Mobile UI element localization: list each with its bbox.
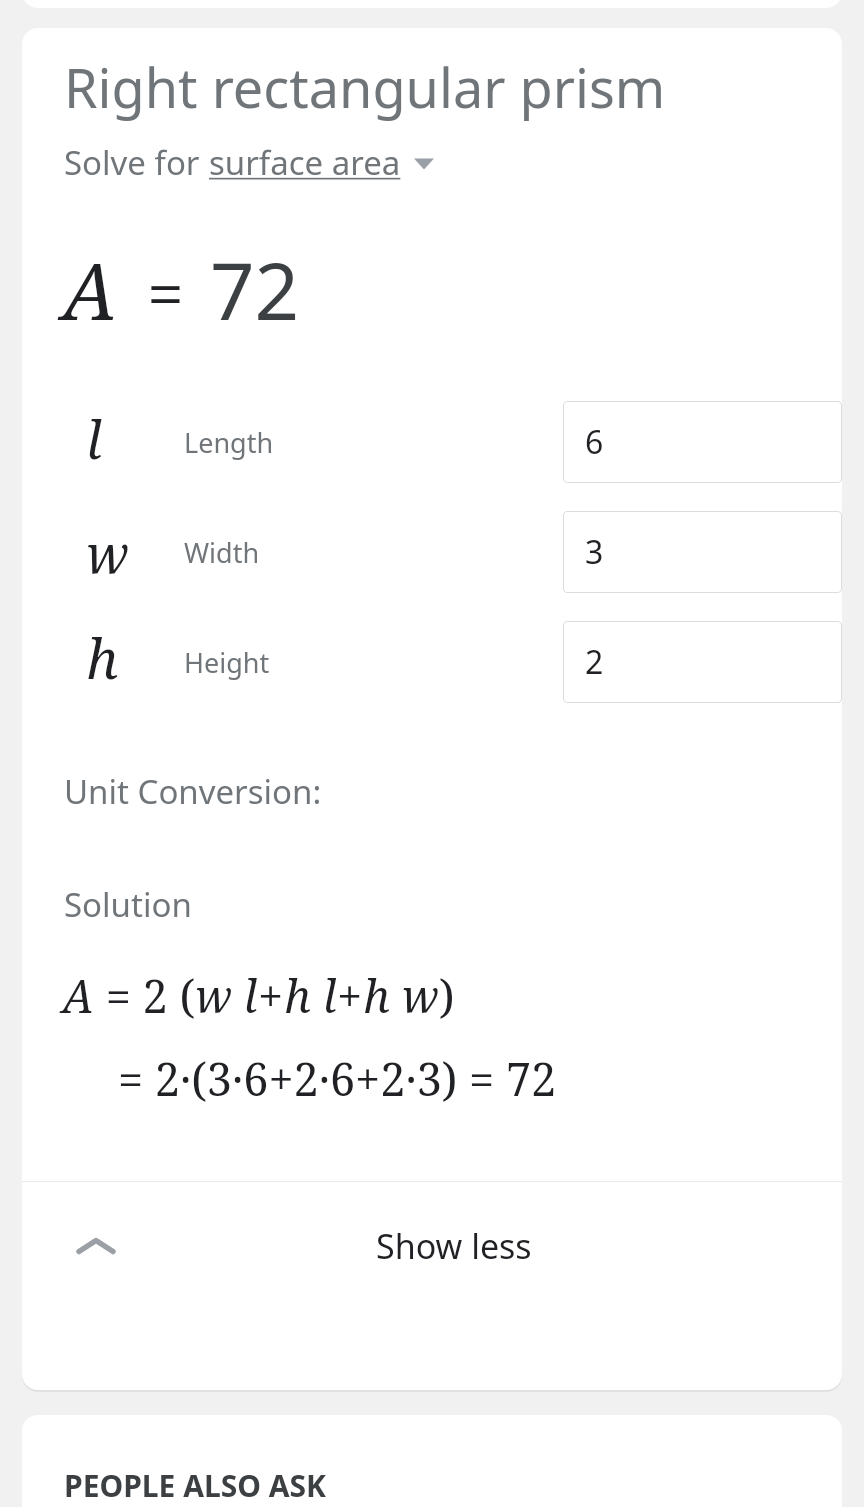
staticText: h w	[363, 965, 439, 1026]
button[interactable]: Show less	[22, 1182, 842, 1310]
staticText: PEOPLE ALSO ASK	[64, 1465, 326, 1506]
staticText: )	[439, 965, 455, 1026]
staticText: Solve for	[64, 140, 209, 185]
staticText: h l	[284, 965, 337, 1026]
staticText: 72	[210, 237, 300, 343]
staticText: Right rectangular prism	[64, 50, 666, 124]
staticText: w	[86, 517, 129, 588]
button[interactable]: w	[22, 497, 842, 607]
staticText: surface area	[209, 140, 401, 185]
staticText: = 2·(3·6+2·6+2·3) = 72	[118, 1048, 557, 1109]
staticText: h	[86, 621, 119, 695]
staticText: Unit Conversion:	[64, 769, 322, 814]
staticText: Width	[184, 534, 260, 571]
staticText: w l	[195, 965, 258, 1026]
staticText: +	[258, 965, 284, 1026]
staticText: Length	[184, 424, 274, 461]
button[interactable]: surface area	[209, 140, 435, 185]
staticText: Height	[184, 644, 270, 681]
button[interactable]: l	[22, 387, 842, 497]
staticText: 3	[585, 530, 604, 574]
staticText: A	[62, 965, 94, 1026]
button[interactable]: h	[22, 607, 842, 717]
staticText: Solution	[64, 882, 192, 927]
button[interactable]: 3	[563, 511, 842, 593]
other: Show less	[74, 1224, 118, 1268]
staticText: l	[86, 403, 102, 474]
staticText: +	[337, 965, 363, 1026]
staticText: A	[62, 237, 117, 343]
staticText: Show less	[376, 1223, 532, 1269]
staticText: = 2 (	[94, 965, 195, 1026]
staticText: 6	[585, 420, 604, 464]
staticText: 2	[585, 640, 604, 684]
button[interactable]: 6	[563, 401, 842, 483]
button[interactable]: 2	[563, 621, 842, 703]
staticText: =	[147, 247, 184, 337]
